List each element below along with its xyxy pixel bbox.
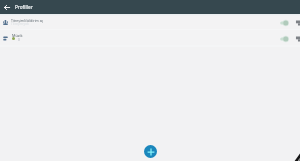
staticText: Titreşim yok [11,22,29,26]
staticText: Profiller [15,4,33,10]
button[interactable]: Navigate up [0,0,13,14]
staticText: 0 [18,38,20,42]
button[interactable]: Add profile [144,145,157,158]
button[interactable]: More options [293,17,300,28]
staticText: Müzik [12,33,23,38]
button[interactable]: Titreşimli bildirim aç [0,14,300,30]
button[interactable]: Toggle profile [279,17,291,28]
button[interactable]: Toggle profile [279,33,291,44]
staticText: Titreşimli bildirim aç [11,18,44,23]
button[interactable]: Müzik [0,30,300,46]
button[interactable]: More options [293,33,300,44]
